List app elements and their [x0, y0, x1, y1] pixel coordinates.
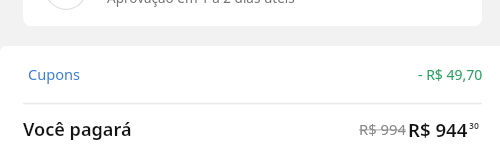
button[interactable]: Cupons [0, 46, 500, 103]
staticText: R$ 944 [408, 117, 468, 142]
button[interactable]: Método de pagamento [23, 0, 482, 26]
staticText: R$ 994 [359, 119, 406, 139]
staticText: 30 [469, 120, 479, 132]
staticText: Você pagará [23, 117, 132, 142]
staticText: Cupons [28, 64, 81, 84]
staticText: Aprovação em 1 a 2 dias úteis [107, 0, 295, 7]
other: Método de pagamento [45, 0, 87, 10]
staticText: - R$ 49,70 [418, 65, 483, 84]
